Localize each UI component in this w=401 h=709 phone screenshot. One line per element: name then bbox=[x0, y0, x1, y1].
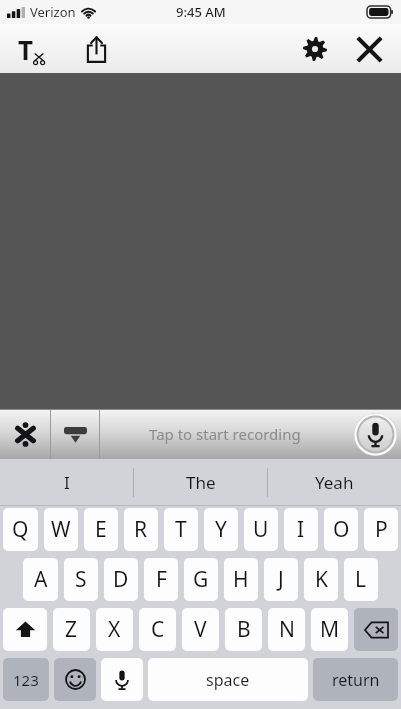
staticText: space bbox=[206, 669, 250, 691]
button[interactable]: 123 bbox=[3, 658, 49, 701]
staticText: Q bbox=[12, 515, 29, 544]
staticText: M bbox=[320, 615, 340, 644]
button[interactable]: Emoji bbox=[54, 658, 96, 701]
staticText: Tap to start recording bbox=[149, 424, 301, 444]
staticText: C bbox=[151, 615, 165, 644]
button[interactable]: Dictate bbox=[101, 658, 143, 701]
button[interactable]: E bbox=[84, 508, 118, 551]
button[interactable]: B bbox=[225, 608, 262, 651]
button[interactable]: H bbox=[224, 558, 258, 601]
staticText: K bbox=[315, 565, 328, 594]
button[interactable]: I bbox=[0, 459, 133, 506]
staticText: G bbox=[193, 565, 209, 594]
staticText: U bbox=[253, 515, 269, 544]
button[interactable]: V bbox=[182, 608, 219, 651]
staticText: The bbox=[186, 471, 216, 494]
button[interactable]: Hide keyboard bbox=[51, 409, 99, 459]
staticText: D bbox=[113, 565, 129, 594]
staticText: B bbox=[237, 615, 251, 644]
staticText: F bbox=[156, 565, 167, 594]
button[interactable]: Settings bbox=[291, 25, 339, 73]
button[interactable]: Shift bbox=[3, 608, 47, 651]
staticText: N bbox=[279, 615, 295, 644]
staticText: 9:45 AM bbox=[176, 3, 226, 21]
button[interactable]: Clear text bbox=[8, 25, 56, 73]
button[interactable]: G bbox=[184, 558, 218, 601]
button[interactable]: R bbox=[124, 508, 158, 551]
button[interactable]: Record bbox=[352, 411, 398, 457]
staticText: Y bbox=[215, 515, 227, 544]
button[interactable]: J bbox=[264, 558, 298, 601]
button[interactable]: T bbox=[164, 508, 198, 551]
button[interactable]: N bbox=[268, 608, 305, 651]
staticText: I bbox=[297, 515, 305, 544]
staticText: L bbox=[355, 565, 367, 594]
staticText: I bbox=[64, 471, 70, 494]
button[interactable]: M bbox=[311, 608, 348, 651]
staticText: O bbox=[333, 515, 350, 544]
button[interactable]: Backspace bbox=[354, 608, 398, 651]
staticText: return bbox=[332, 669, 380, 691]
staticText: H bbox=[233, 565, 249, 594]
button[interactable]: F bbox=[144, 558, 178, 601]
staticText: V bbox=[194, 615, 207, 644]
button[interactable]: Tap to start recording bbox=[100, 409, 349, 459]
staticText: P bbox=[375, 515, 388, 544]
staticText: Verizon bbox=[30, 3, 76, 21]
button[interactable]: S bbox=[64, 558, 98, 601]
button[interactable]: A bbox=[23, 558, 58, 601]
button[interactable]: X bbox=[96, 608, 133, 651]
button[interactable]: space bbox=[148, 658, 308, 701]
button[interactable]: D bbox=[104, 558, 138, 601]
button[interactable]: U bbox=[244, 508, 278, 551]
staticText: Yeah bbox=[315, 471, 354, 494]
staticText: 123 bbox=[13, 670, 39, 690]
staticText: Z bbox=[65, 615, 78, 644]
button[interactable]: Q bbox=[3, 508, 38, 551]
button[interactable]: Z bbox=[53, 608, 90, 651]
button[interactable]: O bbox=[324, 508, 358, 551]
button[interactable]: return bbox=[313, 658, 398, 701]
button[interactable]: I bbox=[284, 508, 318, 551]
button[interactable]: Close bbox=[345, 25, 393, 73]
staticText: R bbox=[134, 515, 148, 544]
staticText: S bbox=[75, 565, 87, 594]
staticText: E bbox=[95, 515, 107, 544]
staticText: A bbox=[34, 565, 48, 594]
staticText: T bbox=[18, 32, 34, 67]
button[interactable]: C bbox=[139, 608, 176, 651]
button[interactable]: W bbox=[44, 508, 78, 551]
button[interactable]: K bbox=[304, 558, 338, 601]
button[interactable]: Dragon menu bbox=[0, 409, 50, 459]
staticText: J bbox=[278, 565, 284, 594]
button[interactable]: Share bbox=[72, 25, 120, 73]
button[interactable]: P bbox=[364, 508, 398, 551]
staticText: T bbox=[175, 515, 187, 544]
staticText: W bbox=[51, 515, 71, 544]
staticText: X bbox=[108, 615, 121, 644]
button[interactable]: Yeah bbox=[268, 459, 401, 506]
button[interactable]: Y bbox=[204, 508, 238, 551]
button[interactable]: The bbox=[134, 459, 267, 506]
button[interactable]: L bbox=[344, 558, 378, 601]
